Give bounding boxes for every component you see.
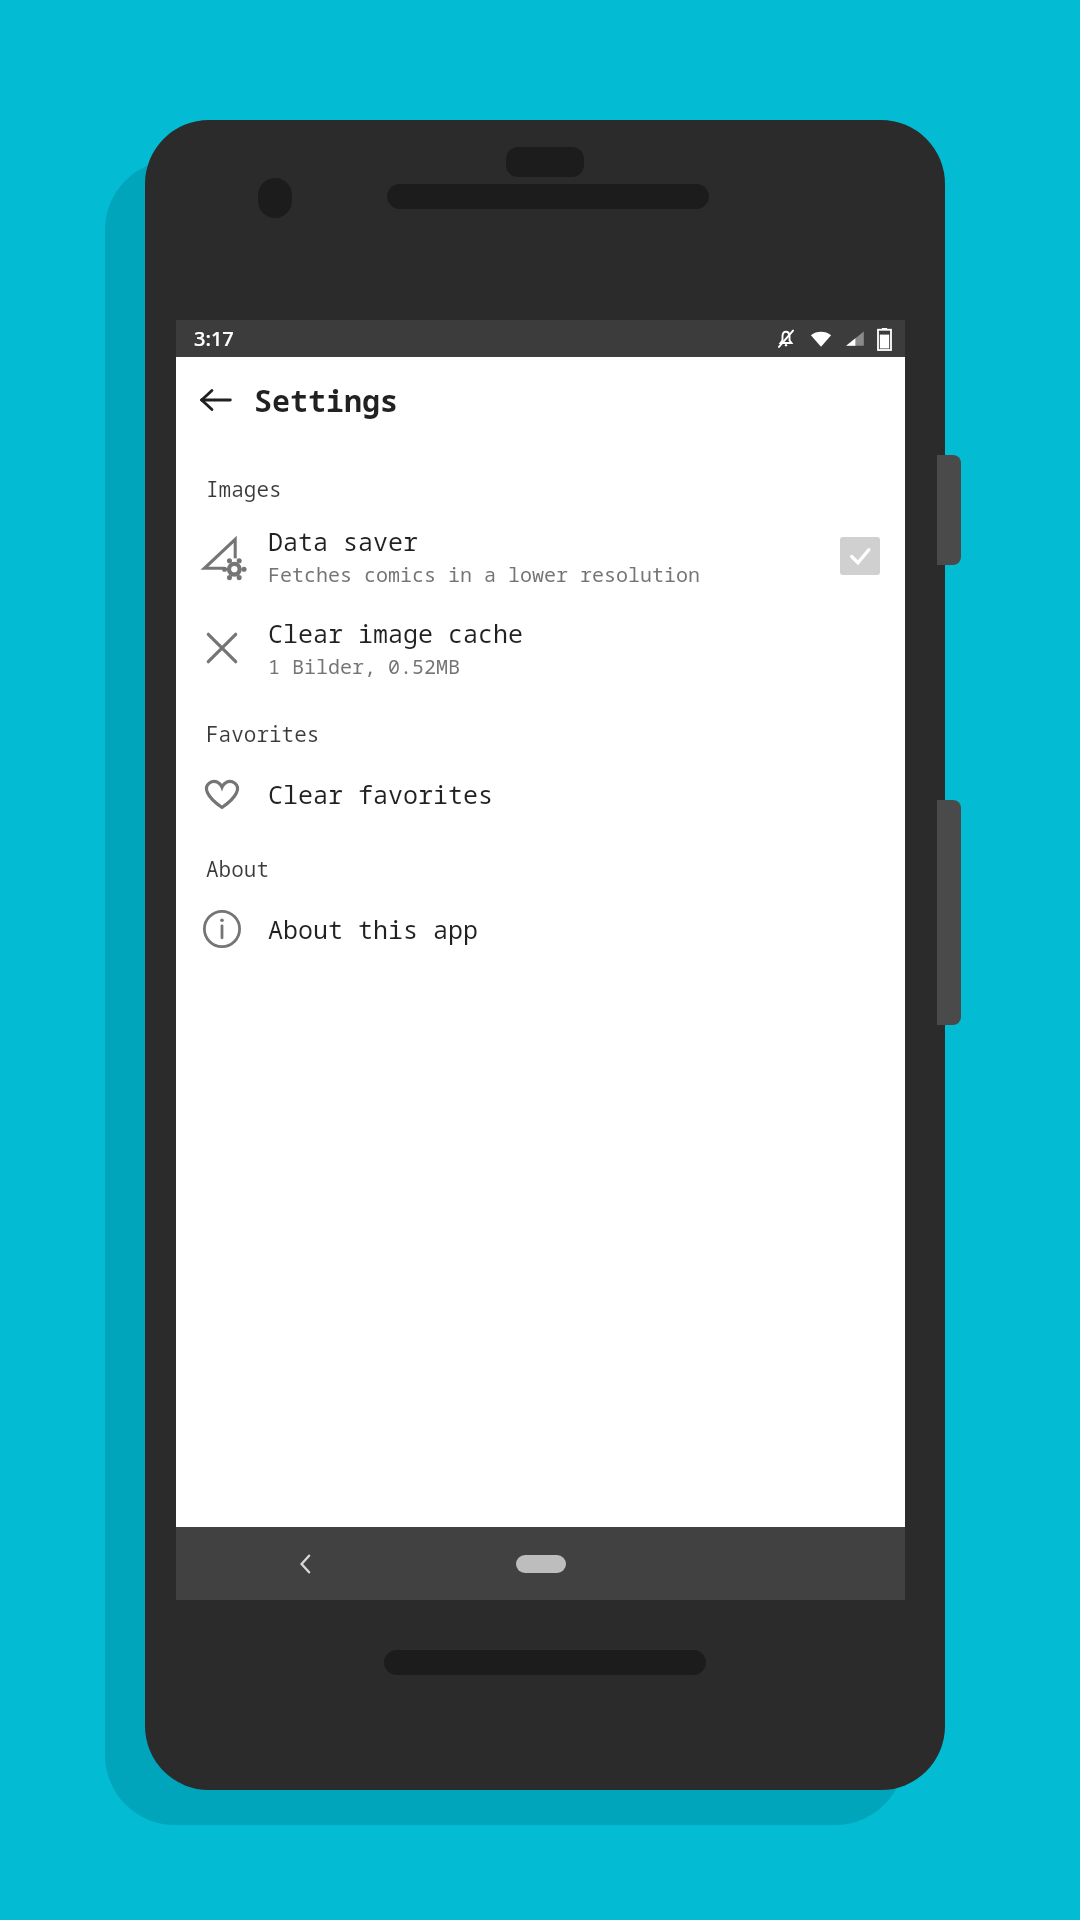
staticText: Clear favorites [268,777,494,811]
staticText: Settings [254,380,398,421]
button[interactable]: About this app [176,890,905,968]
staticText: About [206,855,269,884]
button[interactable]: Data saver [176,510,905,602]
button[interactable]: Data saver enabled [839,535,881,577]
button[interactable]: Navigate up [186,370,246,430]
button[interactable]: Clear image cache [176,602,905,694]
staticText: Images [206,475,282,504]
button[interactable]: Back [276,1534,336,1594]
staticText: Fetches comics in a lower resolution [268,561,700,588]
staticText: Clear image cache [268,616,524,650]
staticText: About this app [268,912,479,946]
staticText: Data saver [268,524,419,558]
staticText: Favorites [206,720,320,749]
button[interactable]: Home [501,1541,581,1587]
staticText: 3:17 [194,325,234,352]
staticText: 1 Bilder, 0.52MB [268,653,460,680]
button[interactable]: Clear favorites [176,755,905,833]
